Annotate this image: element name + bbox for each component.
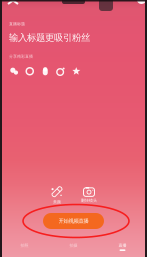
button[interactable]: 翻转镜头 [76,185,102,203]
button[interactable]: QQ [41,67,49,75]
button[interactable]: 朋友圈 [25,67,34,75]
staticText: 输入标题更吸引粉丝 [9,32,90,43]
staticText: 美颜 [53,199,61,204]
staticText: 拍摄 [69,243,77,248]
staticText: 翻转镜头 [81,198,97,203]
button[interactable]: 开始视频直播 [43,213,104,229]
staticText: 拍照 [20,243,28,248]
button[interactable]: 微博 [56,67,65,75]
button[interactable]: 微信 [10,67,18,75]
button[interactable]: 拍摄 [49,243,98,251]
button[interactable]: 拍照 [0,243,49,251]
staticText: 分享精彩直播 [9,54,33,59]
staticText: 开始视频直播 [58,218,88,224]
button[interactable]: 直播 [98,243,147,251]
staticText: 直播标题 [9,21,25,26]
button[interactable]: QQ空间 [72,67,80,75]
button[interactable]: 美颜 [45,185,69,204]
staticText: 直播 [118,243,126,248]
